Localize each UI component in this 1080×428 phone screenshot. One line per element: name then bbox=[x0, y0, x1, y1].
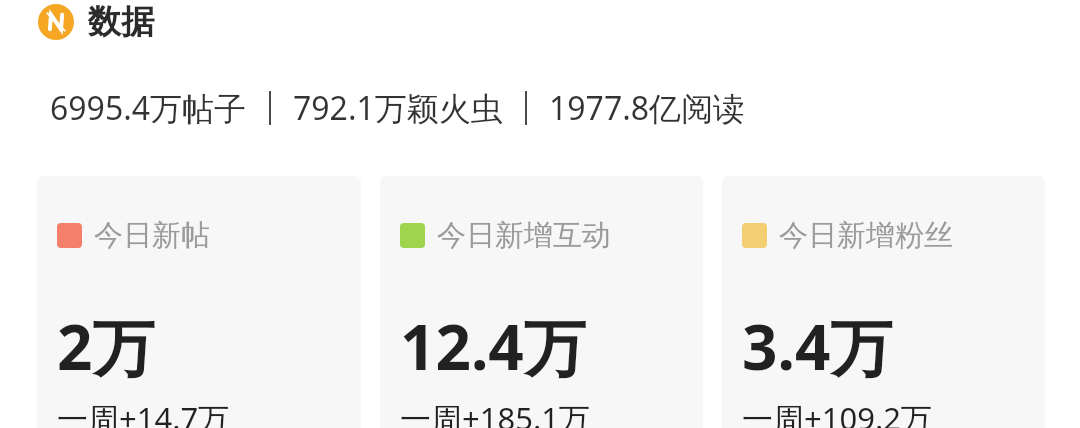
button[interactable]: 今日新增互动 bbox=[380, 176, 703, 428]
button[interactable]: App logo bbox=[0, 0, 1080, 44]
staticText: 今日新增互动 bbox=[437, 217, 611, 254]
staticText: 3.4万 bbox=[742, 304, 893, 389]
button[interactable]: 今日新帖 bbox=[37, 176, 361, 428]
staticText: 一周+109.2万 bbox=[742, 397, 932, 428]
staticText: 1977.8亿阅读 bbox=[549, 86, 746, 130]
staticText: 792.1万颖火虫 bbox=[293, 86, 503, 130]
staticText: 一周+185.1万 bbox=[400, 397, 590, 428]
button[interactable]: 6995.4万帖子 bbox=[0, 86, 1080, 130]
staticText: 2万 bbox=[57, 304, 155, 389]
staticText: 6995.4万帖子 bbox=[50, 86, 247, 130]
staticText: 今日新增粉丝 bbox=[779, 217, 953, 254]
staticText: 今日新帖 bbox=[94, 217, 210, 254]
other: App logo bbox=[38, 4, 74, 40]
staticText: 一周+14.7万 bbox=[57, 397, 230, 428]
staticText: 数据 bbox=[88, 1, 154, 43]
button[interactable]: 今日新增粉丝 bbox=[722, 176, 1045, 428]
staticText: 12.4万 bbox=[400, 304, 586, 389]
